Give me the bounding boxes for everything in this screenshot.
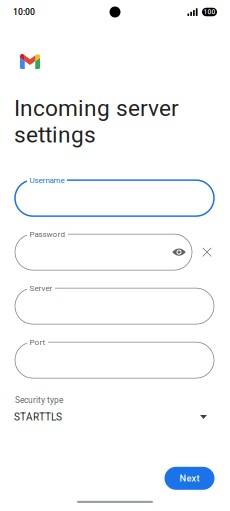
staticText: Port — [29, 338, 45, 347]
staticText: Security type — [15, 395, 63, 405]
staticText: STARTTLS — [14, 411, 62, 423]
staticText: 10:00 — [13, 7, 35, 17]
staticText: Incoming server settings — [14, 95, 179, 148]
button[interactable]: Show password — [170, 243, 188, 261]
button[interactable]: Next — [164, 467, 214, 490]
staticText: Next — [179, 473, 199, 484]
staticText: Username — [29, 176, 64, 185]
button[interactable]: Clear password — [198, 243, 216, 261]
button[interactable]: STARTTLS — [14, 409, 207, 425]
staticText: Server — [29, 284, 52, 293]
staticText: Password — [29, 230, 65, 239]
staticText: 100 — [203, 8, 215, 16]
